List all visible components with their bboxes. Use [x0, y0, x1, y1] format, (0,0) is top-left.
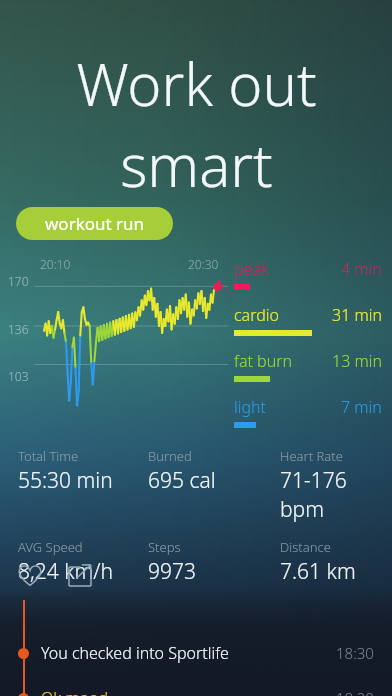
staticText: Distance [280, 538, 331, 556]
staticText: 7 min [341, 396, 382, 418]
staticText: 136 [8, 321, 29, 337]
staticText: Total Time [18, 447, 79, 465]
staticText: 55:30 min [18, 466, 113, 495]
staticText: workout run [45, 212, 145, 235]
staticText: cardio [234, 304, 279, 326]
button[interactable]: cardio [234, 304, 382, 336]
button[interactable]: workout run [16, 207, 173, 240]
staticText: 20:10 [40, 256, 71, 272]
staticText: You checked into Sportlife [41, 642, 229, 664]
staticText: AVG Speed [18, 538, 83, 556]
button[interactable]: Total Time [18, 447, 148, 495]
staticText: 103 [8, 368, 29, 384]
button[interactable]: Heart Rate [280, 447, 392, 524]
staticText: 20:30 [188, 256, 219, 272]
staticText: 13 min [332, 350, 382, 372]
staticText: Burned [148, 447, 192, 465]
button[interactable]: Steps [148, 538, 280, 586]
staticText: fat burn [234, 350, 293, 372]
staticText: 170 [8, 273, 29, 289]
staticText: Steps [148, 538, 181, 556]
staticText: 8,24 km/h [18, 557, 114, 586]
button[interactable]: fat burn [234, 350, 382, 382]
staticText: peak [234, 258, 269, 280]
staticText: 71-176 bpm [280, 466, 392, 524]
button[interactable]: You checked into Sportlife [0, 638, 392, 668]
button[interactable]: peak [234, 258, 382, 290]
button[interactable]: Distance [280, 538, 392, 586]
staticText: 18:30 [336, 643, 374, 663]
staticText: smart [120, 125, 273, 204]
button[interactable]: Favorite [13, 558, 47, 592]
staticText: 695 cal [148, 466, 216, 495]
staticText: Work out [76, 44, 317, 123]
staticText: 9973 [148, 557, 196, 586]
staticText: light [234, 396, 266, 418]
staticText: 18:20 [336, 688, 374, 696]
staticText: Ok mood [41, 687, 109, 696]
staticText: Heart Rate [280, 447, 343, 465]
staticText: 7.61 km [280, 557, 356, 586]
button[interactable]: AVG Speed [18, 538, 148, 586]
staticText: 4 min [341, 258, 382, 280]
staticText: 31 min [332, 304, 382, 326]
button[interactable]: Burned [148, 447, 280, 495]
button[interactable]: Share [63, 558, 97, 592]
button[interactable]: Ok mood [0, 683, 392, 696]
button[interactable]: light [234, 396, 382, 428]
